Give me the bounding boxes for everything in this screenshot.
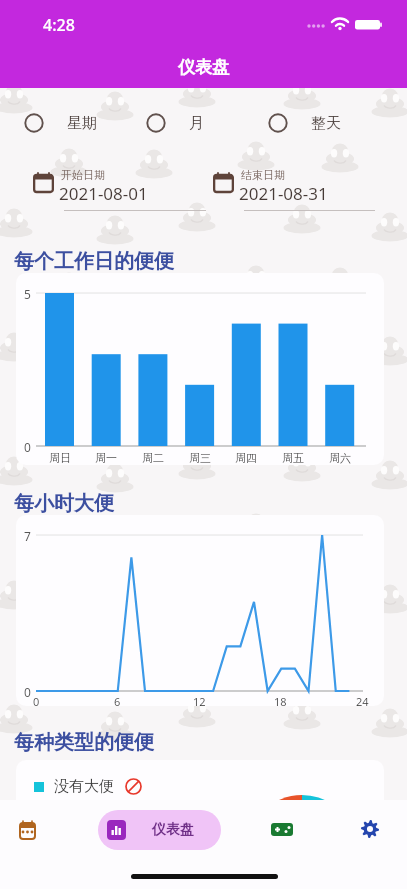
staticText: 周五 <box>282 451 304 465</box>
staticText: 0 <box>24 439 31 455</box>
staticText: 12 <box>193 694 206 706</box>
staticText: 周一 <box>95 451 117 465</box>
staticText: 每小时大便 <box>14 491 114 516</box>
staticText: 2021-08-31 <box>239 182 328 205</box>
staticText: 每种类型的便便 <box>14 730 154 755</box>
staticText: 每个工作日的便便 <box>14 249 174 274</box>
staticText: 7 <box>24 528 31 544</box>
button[interactable]: 仪表盘 <box>98 810 221 850</box>
button[interactable]: Settings <box>343 809 397 849</box>
staticText: 周三 <box>189 451 211 465</box>
staticText: 周六 <box>329 451 351 465</box>
staticText: 0 <box>33 694 40 706</box>
staticText: 2021-08-01 <box>59 182 148 205</box>
staticText: 没有大便 <box>54 777 114 796</box>
staticText: 4:28 <box>43 14 75 36</box>
staticText: 开始日期 <box>61 168 105 182</box>
staticText: 18 <box>274 694 287 706</box>
button[interactable]: Games <box>255 809 309 849</box>
button[interactable]: 开始日期 <box>25 162 206 216</box>
button[interactable]: 整天 <box>267 105 379 141</box>
button[interactable]: 月 <box>145 105 257 141</box>
staticText: 正常大便 <box>54 802 114 821</box>
staticText: 6 <box>114 694 121 706</box>
staticText: 月 <box>189 114 204 133</box>
staticText: 周日 <box>49 451 71 465</box>
staticText: 24 <box>356 694 369 706</box>
button[interactable]: 结束日期 <box>205 162 375 216</box>
staticText: 结束日期 <box>241 168 285 182</box>
staticText: 周二 <box>142 451 164 465</box>
staticText: 仪表盘 <box>152 821 194 839</box>
staticText: 0 <box>24 684 31 700</box>
staticText: 星期 <box>67 114 97 133</box>
staticText: 整天 <box>311 114 341 133</box>
staticText: 仪表盘 <box>178 57 229 78</box>
button[interactable]: Calendar <box>0 810 54 850</box>
staticText: 5 <box>24 286 31 302</box>
button[interactable]: 星期 <box>23 105 135 141</box>
staticText: 周四 <box>235 451 257 465</box>
